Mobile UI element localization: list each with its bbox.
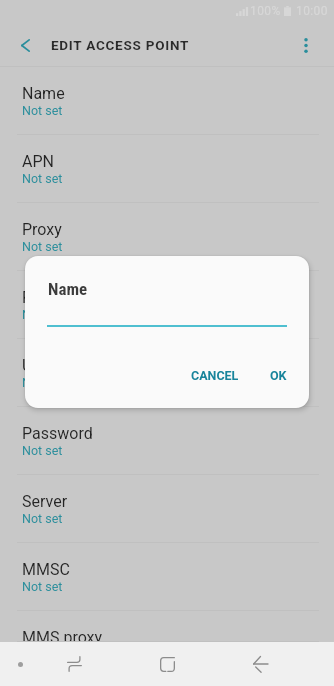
staticText: Name: [48, 279, 88, 299]
button[interactable]: Recent apps: [52, 642, 96, 686]
staticText: Not set: [22, 239, 63, 254]
button[interactable]: Show keyboard: [0, 642, 40, 686]
button[interactable]: Username: [0, 339, 334, 407]
staticText: MMS proxy: [22, 628, 103, 647]
staticText: Port: [22, 288, 53, 307]
staticText: EDIT ACCESS POINT: [51, 37, 190, 53]
staticText: Not set: [22, 171, 63, 186]
staticText: MMSC: [22, 560, 70, 579]
button[interactable]: Name: [0, 67, 334, 135]
button[interactable]: MMSC: [0, 543, 334, 611]
button[interactable]: MMS proxy: [0, 611, 334, 642]
staticText: Not set: [22, 579, 63, 594]
staticText: Not set: [22, 103, 63, 118]
button[interactable]: Port: [0, 271, 334, 339]
button[interactable]: Back: [238, 642, 282, 686]
button[interactable]: More options: [288, 27, 324, 63]
staticText: 100%: [250, 4, 281, 18]
staticText: Password: [22, 424, 93, 443]
staticText: APN: [22, 152, 54, 171]
staticText: Not set: [22, 511, 63, 526]
staticText: Proxy: [22, 220, 62, 239]
staticText: Not set: [22, 443, 63, 458]
staticText: Not set: [22, 375, 63, 390]
button[interactable]: OK: [261, 360, 296, 391]
button[interactable]: APN: [0, 135, 334, 203]
staticText: CANCEL: [191, 368, 239, 383]
staticText: Not set: [22, 307, 63, 322]
button[interactable]: Navigate up: [3, 23, 47, 67]
staticText: 10:00: [296, 4, 328, 18]
staticText: OK: [270, 368, 287, 383]
staticText: Username: [22, 356, 95, 375]
button[interactable]: CANCEL: [182, 360, 248, 391]
button[interactable]: Proxy: [0, 203, 334, 271]
button[interactable]: Password: [0, 407, 334, 475]
button[interactable]: Home: [145, 642, 189, 686]
staticText: Server: [22, 492, 68, 511]
staticText: Name: [22, 84, 65, 103]
button[interactable]: Server: [0, 475, 334, 543]
